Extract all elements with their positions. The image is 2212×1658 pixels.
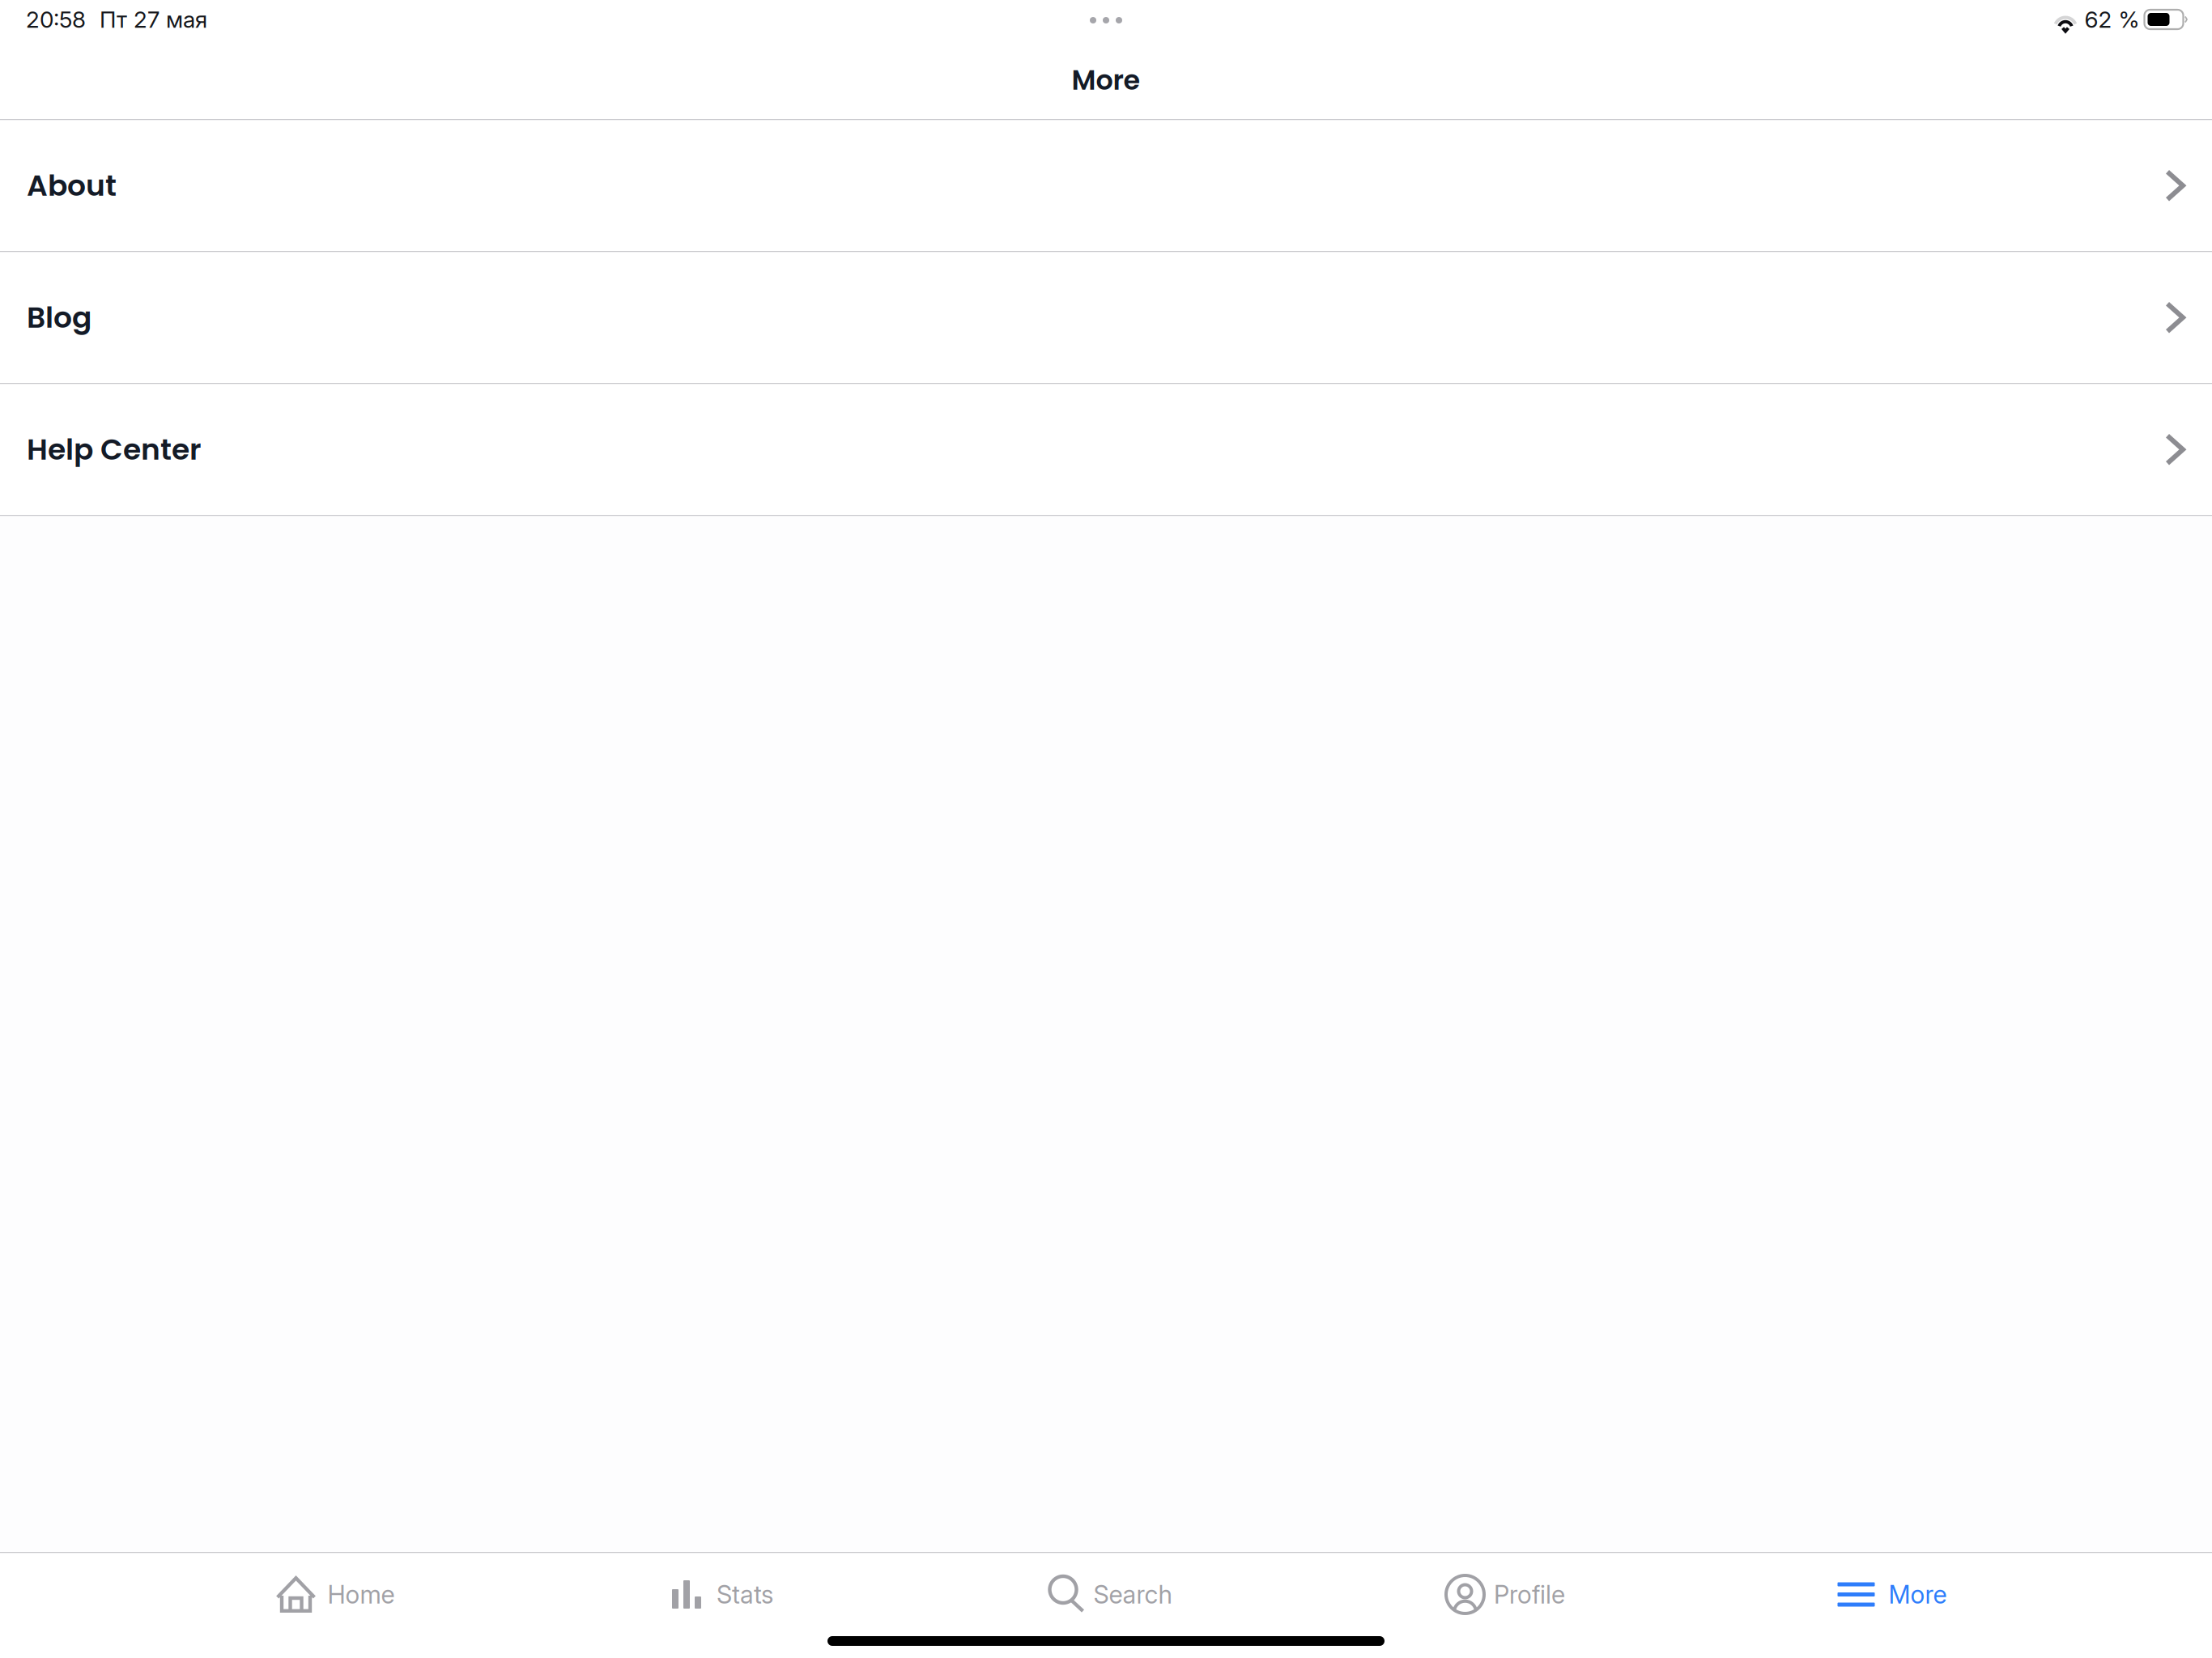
staticText: More (1889, 1579, 1947, 1609)
staticText: Search (1093, 1579, 1172, 1609)
staticText: Help Center (27, 429, 202, 470)
button[interactable]: About (0, 120, 2212, 252)
button[interactable]: Profile (1306, 1572, 1706, 1617)
button[interactable]: Stats (529, 1572, 916, 1617)
button[interactable]: Multitasking Controls (1061, 17, 1151, 23)
staticText: Stats (717, 1579, 773, 1609)
staticText: Profile (1494, 1579, 1565, 1609)
staticText: Blog (27, 297, 91, 338)
staticText: About (27, 165, 117, 206)
staticText: 62 % (2084, 6, 2140, 33)
button[interactable]: Help Center (0, 384, 2212, 516)
staticText: More (1072, 61, 1140, 99)
staticText: Home (328, 1579, 395, 1609)
button[interactable]: Home (142, 1572, 529, 1617)
button[interactable]: Blog (0, 252, 2212, 384)
button[interactable]: Search (916, 1572, 1306, 1617)
staticText: Пт 27 мая (100, 6, 207, 33)
button[interactable]: More (1706, 1572, 2079, 1617)
staticText: 20:58 (26, 6, 86, 33)
